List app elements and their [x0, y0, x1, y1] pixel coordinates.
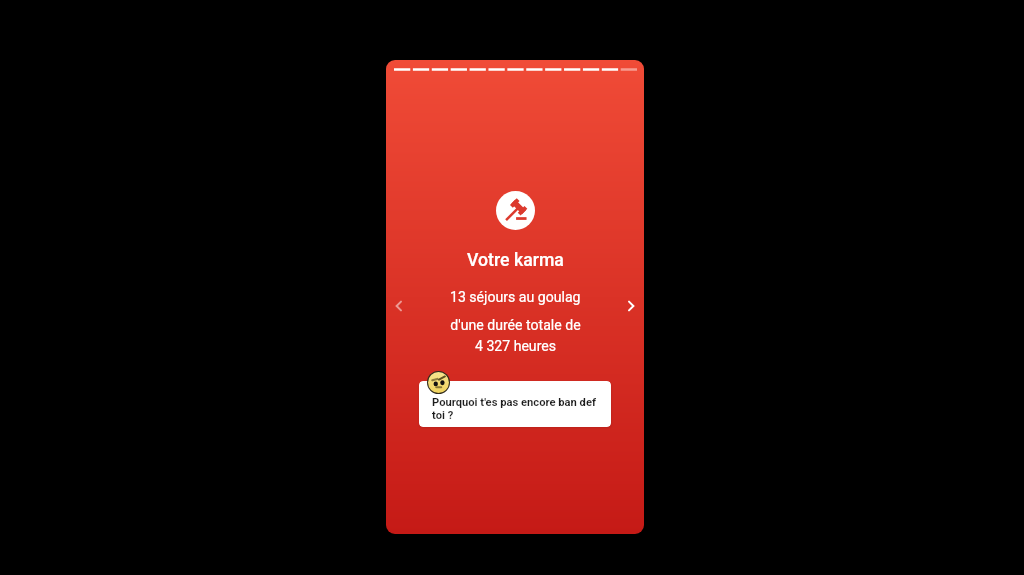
button[interactable]: Précédent	[387, 294, 411, 318]
button[interactable]: Suivant	[619, 294, 643, 318]
button[interactable]: Story Votre karma	[386, 60, 644, 534]
staticText: d'une durée totale de 4 327 heures	[450, 317, 581, 354]
button[interactable]: Pourquoi t'es pas encore ban def toi ?	[419, 381, 611, 427]
staticText: 13 séjours au goulag	[450, 289, 581, 306]
staticText: Votre karma	[467, 250, 564, 271]
staticText: Pourquoi t'es pas encore ban def toi ?	[432, 396, 600, 422]
